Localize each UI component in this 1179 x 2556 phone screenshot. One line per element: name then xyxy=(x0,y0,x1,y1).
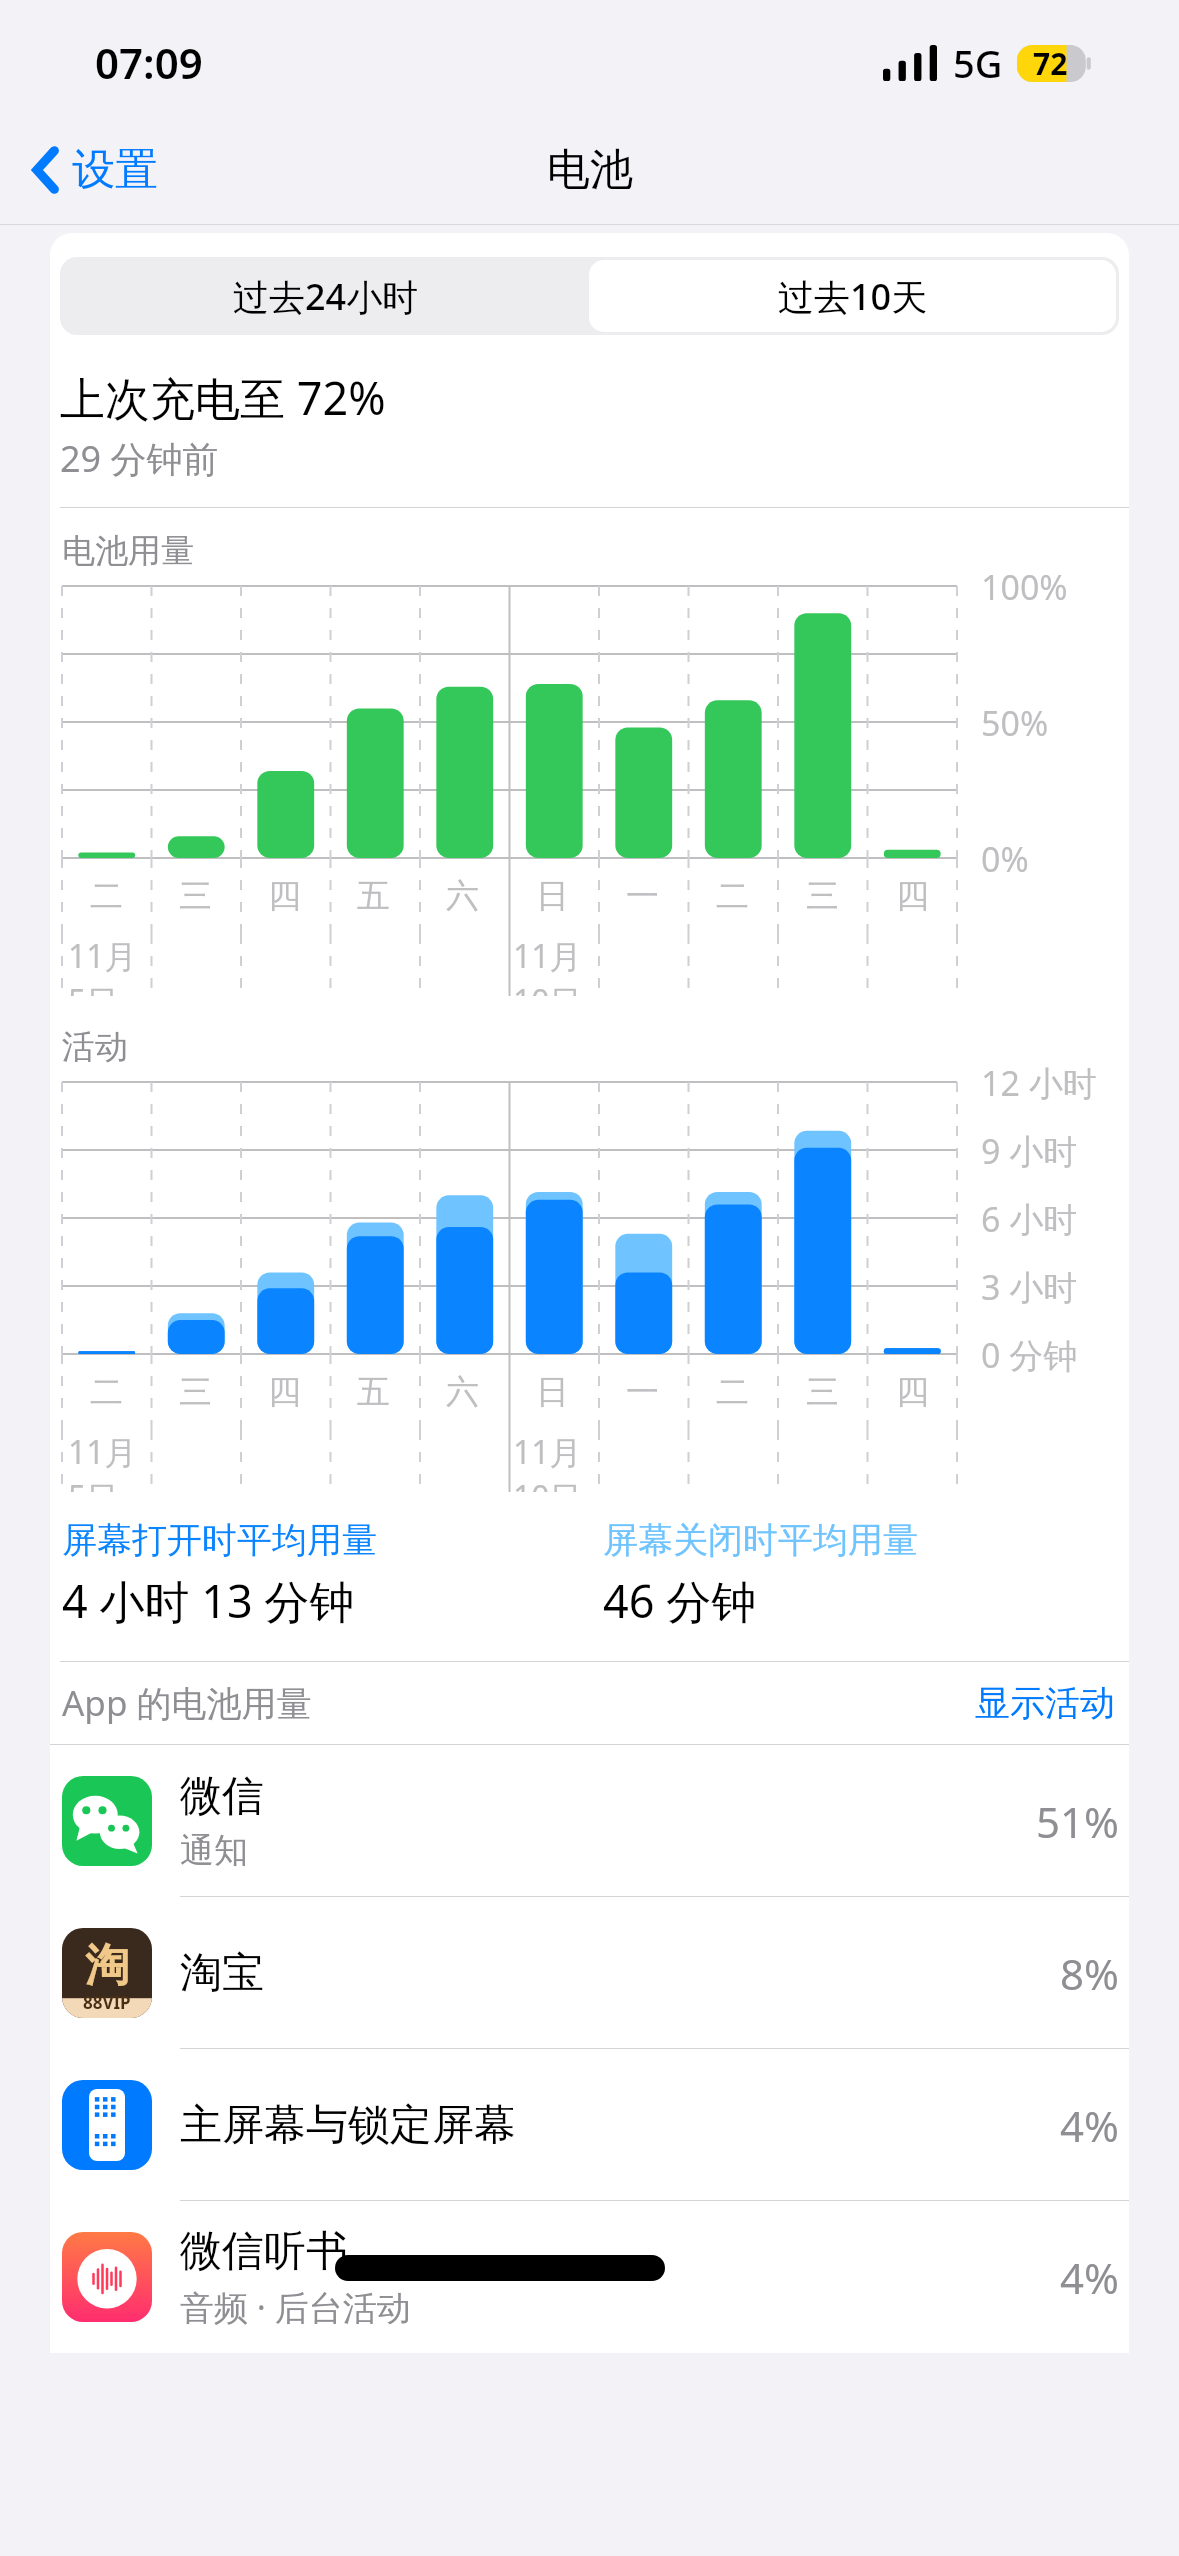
staticText: 五 xyxy=(357,875,390,917)
staticText: 5G xyxy=(953,37,1003,89)
staticText: 四 xyxy=(896,1371,929,1413)
staticText: 日 xyxy=(536,875,569,917)
button[interactable]: 微信听书 xyxy=(50,2201,1129,2353)
staticText: App 的电池用量 xyxy=(62,1679,312,1727)
staticText: 三 xyxy=(806,875,839,917)
staticText: 0% xyxy=(981,836,1029,882)
button[interactable]: 淘 xyxy=(50,1897,1129,2049)
staticText: 电池用量 xyxy=(62,530,194,572)
staticText: 6 小时 xyxy=(981,1196,1078,1242)
staticText: 11月5日 xyxy=(68,934,151,996)
staticText: 8% xyxy=(1060,1945,1119,2002)
staticText: 二 xyxy=(716,875,749,917)
staticText: 过去10天 xyxy=(778,272,928,321)
button[interactable]: 微信 xyxy=(50,1745,1129,1897)
staticText: 46 分钟 xyxy=(603,1570,757,1631)
staticText: 六 xyxy=(446,875,479,917)
button[interactable]: 过去10天 xyxy=(589,260,1116,332)
staticText: 电池 xyxy=(547,143,633,197)
staticText: 上次充电至 72% xyxy=(60,367,386,428)
staticText: 11月10日 xyxy=(513,1430,597,1492)
staticText: 11月10日 xyxy=(513,934,597,996)
staticText: 三 xyxy=(179,875,212,917)
staticText: 9 小时 xyxy=(981,1128,1078,1174)
staticText: 0 分钟 xyxy=(981,1332,1078,1378)
staticText: 二 xyxy=(716,1371,749,1413)
button[interactable]: 主屏幕与锁定屏幕 xyxy=(50,2049,1129,2201)
staticText: 淘 xyxy=(85,1938,129,1993)
staticText: 屏幕打开时平均用量 xyxy=(62,1518,377,1562)
staticText: 设置 xyxy=(72,143,158,197)
staticText: 微信听书 xyxy=(180,2225,348,2278)
button[interactable]: 设置 xyxy=(24,135,168,205)
staticText: 三 xyxy=(179,1371,212,1413)
staticText: 07:09 xyxy=(95,34,203,91)
button[interactable]: 显示活动 xyxy=(971,1677,1119,1729)
staticText: 淘宝 xyxy=(180,1947,264,2000)
staticText: 三 xyxy=(806,1371,839,1413)
staticText: 六 xyxy=(446,1371,479,1413)
staticText: 四 xyxy=(268,1371,301,1413)
staticText: 四 xyxy=(896,875,929,917)
staticText: 音频 · 后台活动 xyxy=(180,2284,411,2330)
staticText: 29 分钟前 xyxy=(60,434,219,483)
staticText: 活动 xyxy=(62,1026,128,1068)
staticText: 4 小时 13 分钟 xyxy=(62,1570,355,1631)
staticText: 一 xyxy=(626,875,659,917)
staticText: 50% xyxy=(981,700,1049,746)
staticText: 100% xyxy=(981,564,1068,610)
staticText: 日 xyxy=(536,1371,569,1413)
staticText: 五 xyxy=(357,1371,390,1413)
staticText: 四 xyxy=(268,875,301,917)
staticText: 二 xyxy=(90,875,123,917)
staticText: 3 小时 xyxy=(981,1264,1078,1310)
staticText: 11月5日 xyxy=(68,1430,151,1492)
button[interactable]: 过去24小时 xyxy=(63,260,589,332)
staticText: 通知 xyxy=(180,1829,248,1872)
staticText: 微信 xyxy=(180,1770,264,1823)
staticText: 二 xyxy=(90,1371,123,1413)
staticText: 显示活动 xyxy=(975,1681,1115,1725)
staticText: 72 xyxy=(1033,43,1068,84)
staticText: 过去24小时 xyxy=(233,272,419,321)
staticText: 51% xyxy=(1036,1793,1119,1850)
staticText: 88VIP xyxy=(83,1991,131,2014)
staticText: 12 小时 xyxy=(981,1060,1097,1106)
staticText: 4% xyxy=(1060,2249,1119,2306)
staticText: 4% xyxy=(1060,2097,1119,2154)
staticText: 屏幕关闭时平均用量 xyxy=(603,1518,918,1562)
staticText: 一 xyxy=(626,1371,659,1413)
staticText: 主屏幕与锁定屏幕 xyxy=(180,2099,516,2152)
